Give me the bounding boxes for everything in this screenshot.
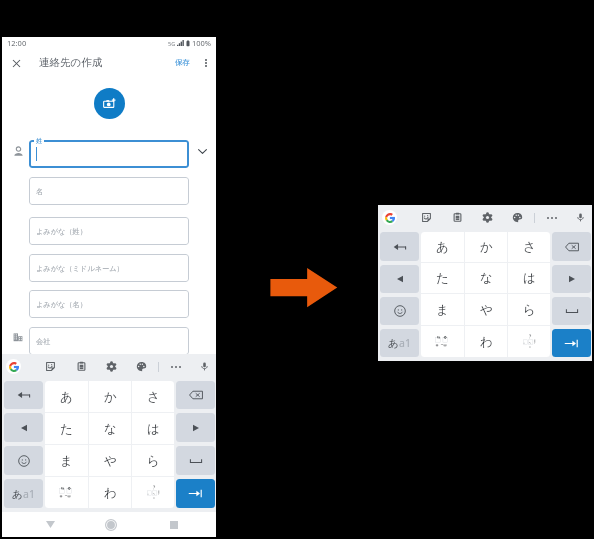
button[interactable]: Punctuation — [508, 326, 550, 357]
staticText: さ — [147, 389, 160, 405]
button[interactable]: は — [132, 413, 174, 444]
staticText: 名 — [36, 187, 44, 196]
staticText: 100% — [192, 38, 212, 48]
staticText: な — [104, 421, 117, 437]
staticText: 12:00 — [7, 38, 27, 48]
button[interactable]: Voice input — [574, 211, 587, 224]
staticText: あ — [12, 488, 23, 501]
button[interactable]: Move right — [176, 413, 215, 442]
staticText: は — [147, 421, 160, 437]
staticText: よみがな（ミドルネーム） — [36, 264, 124, 273]
button[interactable]: Move left — [380, 265, 419, 293]
staticText: a1 — [399, 336, 411, 350]
button[interactable]: More — [169, 360, 182, 373]
staticText: ら — [523, 302, 536, 318]
button[interactable]: Emoji — [380, 297, 419, 325]
button[interactable]: More — [545, 211, 558, 224]
button[interactable]: よみがな（姓） — [29, 217, 189, 245]
button[interactable]: Clipboard — [451, 211, 464, 224]
button[interactable]: Home — [100, 512, 122, 537]
button[interactable] — [29, 140, 189, 168]
button[interactable]: ま — [421, 294, 464, 325]
button[interactable]: か — [89, 381, 131, 412]
button[interactable]: ら — [508, 294, 550, 325]
button[interactable]: わ — [89, 477, 131, 508]
staticText: 姓 — [36, 137, 42, 144]
button[interactable]: Expand — [195, 144, 210, 159]
staticText: た — [60, 421, 73, 437]
button[interactable]: Google — [382, 210, 397, 225]
button[interactable]: Enter — [552, 329, 591, 357]
button[interactable]: あ — [421, 232, 464, 262]
button[interactable]: Voice input — [198, 360, 211, 373]
button[interactable]: Settings — [481, 211, 494, 224]
button[interactable]: た — [421, 263, 464, 293]
button[interactable]: た — [45, 413, 88, 444]
button[interactable]: Backspace — [552, 232, 591, 261]
button[interactable]: Recents — [163, 512, 185, 537]
button[interactable]: Clipboard — [75, 360, 88, 373]
staticText: わ — [480, 334, 493, 350]
staticText: は — [523, 270, 536, 286]
button[interactable]: Punctuation — [132, 477, 174, 508]
button[interactable]: More options — [196, 53, 215, 72]
button[interactable]: Theme — [511, 211, 524, 224]
button[interactable]: Stickers — [420, 211, 433, 224]
staticText: ま — [436, 302, 449, 318]
button[interactable]: あ — [4, 479, 43, 508]
button[interactable]: Space — [552, 297, 591, 325]
button[interactable]: か — [465, 232, 507, 262]
button[interactable]: さ — [508, 232, 550, 262]
staticText: a1 — [23, 487, 35, 501]
staticText: た — [436, 270, 449, 286]
button[interactable]: な — [465, 263, 507, 293]
button[interactable]: Emoji — [4, 446, 43, 475]
button[interactable]: Dakuten — [45, 477, 88, 508]
button[interactable]: Add photo — [94, 88, 125, 119]
button[interactable]: や — [465, 294, 507, 325]
staticText: 保存 — [175, 58, 190, 67]
staticText: あ — [436, 239, 449, 255]
button[interactable]: Move right — [552, 265, 591, 293]
button[interactable]: ら — [132, 445, 174, 476]
staticText: や — [104, 453, 117, 469]
button[interactable]: Dakuten — [421, 326, 464, 357]
button[interactable]: Enter — [176, 479, 215, 508]
button[interactable]: あ — [380, 329, 419, 357]
button[interactable]: 会社 — [29, 327, 189, 355]
button[interactable]: 名 — [29, 177, 189, 205]
button[interactable]: Undo — [380, 232, 419, 261]
staticText: 5G — [168, 40, 176, 47]
button[interactable]: よみがな（ミドルネーム） — [29, 254, 189, 282]
staticText: な — [480, 270, 493, 286]
button[interactable]: あ — [45, 381, 88, 412]
button[interactable]: Close — [6, 53, 27, 74]
button[interactable]: Backspace — [176, 381, 215, 409]
button[interactable]: Theme — [135, 360, 148, 373]
button[interactable]: や — [89, 445, 131, 476]
staticText: 会社 — [36, 337, 51, 346]
staticText: あ — [388, 337, 399, 350]
button[interactable]: な — [89, 413, 131, 444]
button[interactable]: Back — [39, 512, 61, 537]
button[interactable]: Stickers — [44, 360, 57, 373]
staticText: か — [104, 389, 117, 405]
staticText: よみがな（名） — [36, 300, 87, 309]
button[interactable]: Undo — [4, 381, 43, 409]
staticText: ら — [147, 453, 160, 469]
staticText: あ — [60, 389, 73, 405]
button[interactable]: は — [508, 263, 550, 293]
staticText: や — [480, 302, 493, 318]
button[interactable]: よみがな（名） — [29, 290, 189, 318]
staticText: ま — [60, 453, 73, 469]
button[interactable]: さ — [132, 381, 174, 412]
button[interactable]: Space — [176, 446, 215, 475]
button[interactable]: Move left — [4, 413, 43, 442]
button[interactable]: Settings — [105, 360, 118, 373]
staticText: さ — [523, 239, 536, 255]
button[interactable]: Google — [6, 359, 21, 374]
button[interactable]: 保存 — [172, 55, 193, 70]
staticText: わ — [104, 485, 117, 501]
button[interactable]: わ — [465, 326, 507, 357]
button[interactable]: ま — [45, 445, 88, 476]
